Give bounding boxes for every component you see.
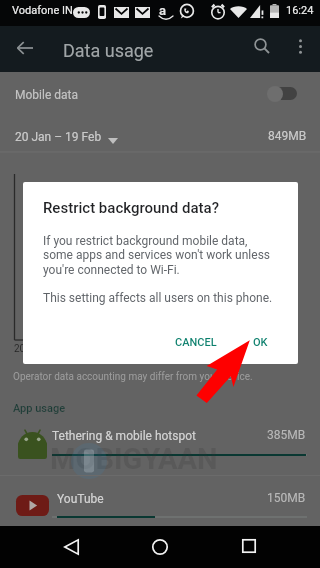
button[interactable]: Search <box>246 30 280 64</box>
button[interactable]: Navigate up <box>7 30 43 66</box>
button[interactable]: More options <box>286 30 315 59</box>
button[interactable]: Recent apps <box>228 526 270 568</box>
button[interactable] <box>0 418 320 475</box>
button[interactable] <box>0 476 320 526</box>
staticText: a <box>159 3 167 18</box>
staticText: If you restrict background mobile data, … <box>43 234 274 277</box>
staticText: Tethering & mobile hotspot <box>52 429 196 443</box>
button[interactable]: OK <box>238 328 282 356</box>
staticText: 150MB <box>267 491 306 505</box>
staticText: Restrict background data? <box>43 199 219 217</box>
staticText: Mobile data <box>15 88 78 102</box>
staticText: 849MB <box>268 129 307 143</box>
button[interactable]: Home <box>139 526 181 568</box>
staticText: Vodafone IN <box>12 4 73 17</box>
staticText: Data usage <box>63 40 154 61</box>
staticText: Operator data accounting may differ from… <box>13 371 253 383</box>
staticText: 20 <box>14 343 26 355</box>
staticText: MOBIGYAAN <box>50 442 218 476</box>
button[interactable] <box>0 72 320 118</box>
staticText: This setting affects all users on this p… <box>43 291 293 305</box>
staticText: OK <box>253 336 268 349</box>
staticText: 385MB <box>267 428 306 442</box>
staticText: CANCEL <box>175 336 217 349</box>
button[interactable]: CANCEL <box>167 328 225 356</box>
staticText: App usage <box>13 402 66 415</box>
button[interactable]: Back <box>50 526 92 568</box>
staticText: YouTube <box>57 492 104 506</box>
staticText: 16:24 <box>286 4 314 17</box>
staticText: 20 Jan – 19 Feb <box>15 130 102 144</box>
